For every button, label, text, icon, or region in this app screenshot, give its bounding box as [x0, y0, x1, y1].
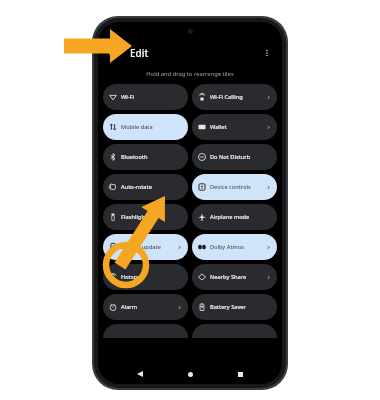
staticText: Device controls: [210, 183, 251, 191]
staticText: Hotspot: [121, 273, 143, 281]
button[interactable]: [103, 324, 188, 338]
staticText: System update: [121, 243, 161, 251]
button[interactable]: Home: [182, 366, 198, 382]
button[interactable]: More options: [258, 44, 276, 62]
staticText: Do Not Disturb: [210, 153, 251, 161]
button[interactable]: [192, 324, 277, 338]
button[interactable]: Bluetooth: [103, 144, 188, 170]
staticText: Battery Saver: [210, 303, 246, 311]
staticText: Auto-rotate: [121, 183, 152, 191]
staticText: Wi-Fi Calling: [210, 93, 243, 101]
button[interactable]: Wi-Fi Calling: [192, 84, 277, 110]
staticText: Hold and drag to rearrange tiles: [146, 70, 234, 78]
button[interactable]: Dolby Atmos: [192, 234, 277, 260]
staticText: Mobile data: [121, 123, 153, 131]
button[interactable]: Recent apps: [232, 366, 248, 382]
button[interactable]: Airplane mode: [192, 204, 277, 230]
button[interactable]: Do Not Disturb: [192, 144, 277, 170]
staticText: Nearby Share: [210, 273, 247, 281]
button[interactable]: Alarm: [103, 294, 188, 320]
button[interactable]: Nearby Share: [192, 264, 277, 290]
staticText: Flashlight: [121, 213, 148, 221]
staticText: Bluetooth: [121, 153, 148, 161]
staticText: Airplane mode: [210, 213, 250, 221]
staticText: Dolby Atmos: [210, 243, 245, 251]
button[interactable]: System update: [103, 234, 188, 260]
button[interactable]: Back: [132, 366, 148, 382]
button[interactable]: Auto-rotate: [103, 174, 188, 200]
button[interactable]: Wallet: [192, 114, 277, 140]
staticText: Wi-Fi: [121, 93, 135, 101]
button[interactable]: Wi-Fi: [103, 84, 188, 110]
staticText: Edit: [130, 46, 149, 60]
button[interactable]: Device controls: [192, 174, 277, 200]
button[interactable]: Battery Saver: [192, 294, 277, 320]
staticText: Wallet: [210, 123, 227, 131]
button[interactable]: Flashlight: [103, 204, 188, 230]
button[interactable]: Hotspot: [103, 264, 188, 290]
button[interactable]: Back: [104, 43, 124, 63]
button[interactable]: Mobile data: [103, 114, 188, 140]
staticText: Alarm: [121, 303, 138, 311]
